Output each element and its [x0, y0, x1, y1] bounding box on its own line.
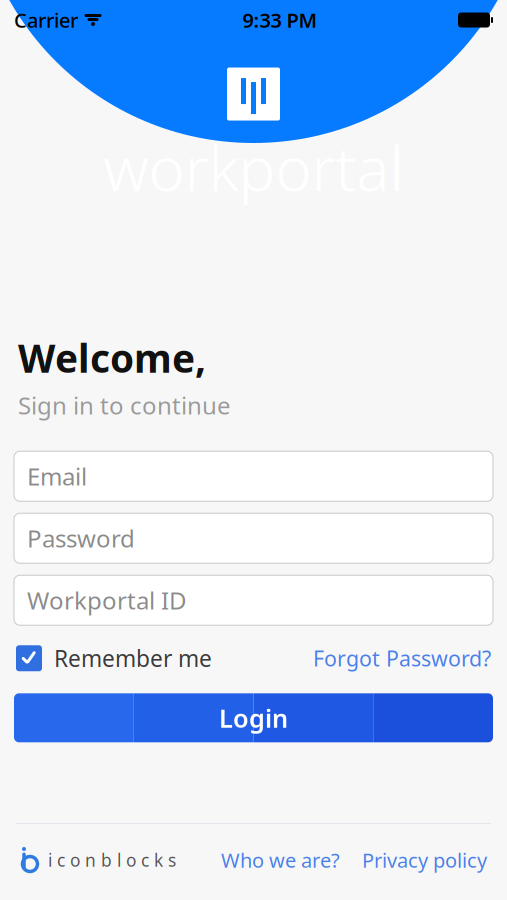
staticText: Email [27, 460, 87, 492]
button[interactable]: Privacy policy [362, 847, 487, 873]
staticText: Carrier [14, 7, 78, 33]
button[interactable]: Email [14, 451, 493, 501]
staticText: Welcome, [18, 332, 206, 383]
staticText: Sign in to continue [18, 389, 231, 421]
staticText: 9:33 PM [242, 7, 317, 33]
button[interactable]: Who we are? [221, 847, 340, 873]
staticText: Password [27, 522, 135, 554]
staticText: Privacy policy [362, 847, 487, 873]
button[interactable]: Forgot Password? [313, 644, 491, 672]
button[interactable]: Password [14, 513, 493, 563]
button[interactable]: Workportal ID [14, 575, 493, 625]
staticText: Login [219, 701, 288, 735]
staticText: Forgot Password? [313, 644, 491, 672]
staticText: Remember me [54, 643, 212, 673]
staticText: Workportal ID [27, 584, 187, 616]
staticText: i c o n b l o c k s [48, 848, 176, 871]
button[interactable]: Remember me [16, 643, 212, 673]
button[interactable]: Login [14, 693, 493, 742]
staticText: Who we are? [221, 847, 340, 873]
staticText: workportal [103, 127, 403, 208]
